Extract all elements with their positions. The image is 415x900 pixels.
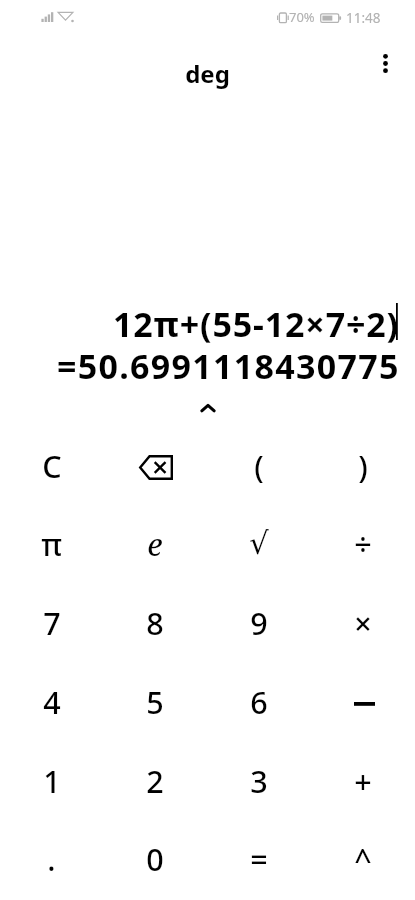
button[interactable]: 0 bbox=[103, 819, 207, 898]
staticText: = bbox=[250, 838, 268, 880]
staticText: √ bbox=[249, 526, 269, 562]
staticText: 12π+(55-12×7÷2) bbox=[113, 301, 399, 347]
button[interactable]: = bbox=[207, 819, 311, 898]
staticText: 8 bbox=[146, 602, 164, 644]
staticText: 1 bbox=[43, 760, 61, 802]
other: Backspace bbox=[103, 426, 207, 505]
button[interactable]: 7 bbox=[0, 583, 103, 662]
staticText: 3 bbox=[250, 760, 268, 802]
staticText: 4 bbox=[43, 681, 61, 723]
button[interactable]: × bbox=[311, 583, 415, 662]
button[interactable]: ^ bbox=[311, 819, 415, 898]
staticText: × bbox=[354, 602, 372, 644]
staticText: 6 bbox=[250, 681, 268, 723]
button[interactable]: 1 bbox=[0, 741, 103, 820]
staticText: . bbox=[47, 838, 56, 880]
button[interactable]: 4 bbox=[0, 662, 103, 741]
button[interactable]: π bbox=[0, 504, 103, 583]
staticText: + bbox=[354, 760, 372, 802]
staticText: 0 bbox=[146, 838, 164, 880]
button[interactable]: ) bbox=[311, 426, 415, 505]
staticText: ^ bbox=[354, 838, 372, 880]
staticText: π bbox=[41, 523, 62, 565]
button[interactable]: Backspace bbox=[103, 426, 207, 505]
button[interactable]: ( bbox=[207, 426, 311, 505]
staticText: ) bbox=[358, 445, 368, 487]
staticText: 9 bbox=[250, 602, 268, 644]
button[interactable]: C bbox=[0, 426, 103, 505]
button[interactable]: 3 bbox=[207, 741, 311, 820]
staticText: e bbox=[147, 523, 163, 565]
staticText: 5 bbox=[146, 681, 164, 723]
button[interactable]: 9 bbox=[207, 583, 311, 662]
staticText: =50.6991118430775 bbox=[57, 343, 400, 389]
staticText: 2 bbox=[146, 760, 164, 802]
staticText: C bbox=[42, 445, 62, 487]
button[interactable]: . bbox=[0, 819, 103, 898]
staticText: ( bbox=[254, 445, 264, 487]
staticText: 70% bbox=[289, 8, 315, 26]
button[interactable] bbox=[311, 662, 415, 741]
button[interactable]: e bbox=[103, 504, 207, 583]
button[interactable]: + bbox=[311, 741, 415, 820]
button[interactable]: √ bbox=[207, 504, 311, 583]
staticText: deg bbox=[0, 57, 415, 90]
button[interactable]: 6 bbox=[207, 662, 311, 741]
staticText: 7 bbox=[43, 602, 61, 644]
staticText: ÷ bbox=[354, 523, 372, 565]
button[interactable]: 8 bbox=[103, 583, 207, 662]
staticText: 11:48 bbox=[346, 9, 381, 27]
button[interactable]: Expand history bbox=[188, 393, 228, 417]
button[interactable]: More options bbox=[369, 47, 402, 80]
button[interactable]: ÷ bbox=[311, 504, 415, 583]
button[interactable]: 5 bbox=[103, 662, 207, 741]
button[interactable]: 2 bbox=[103, 741, 207, 820]
